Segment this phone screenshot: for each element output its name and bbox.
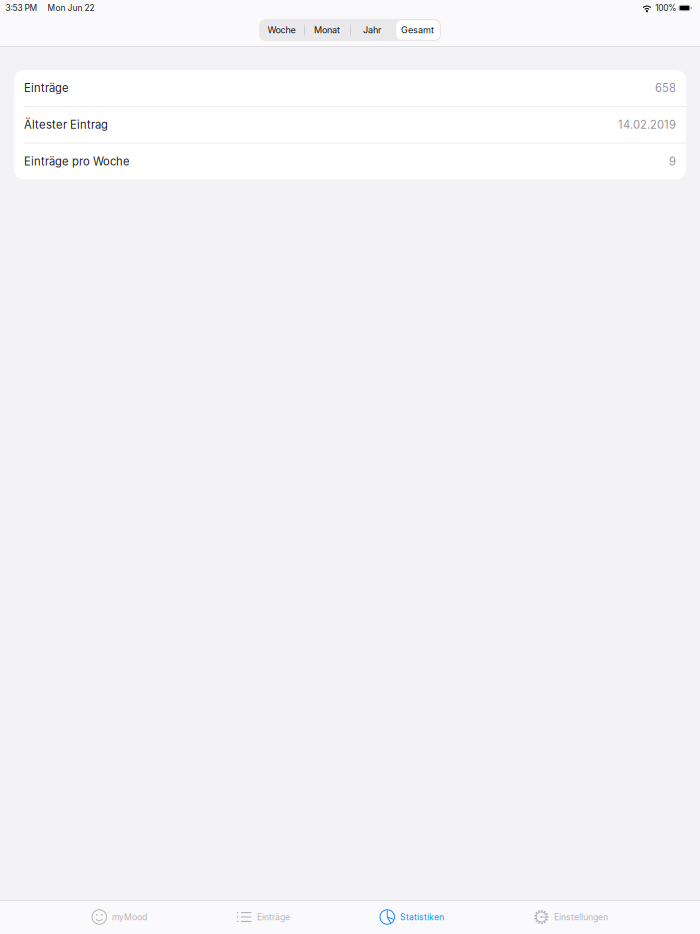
staticText: Gesamt xyxy=(401,24,434,35)
staticText: 658 xyxy=(655,81,676,95)
staticText: Einträge pro Woche xyxy=(24,155,130,168)
staticText: 14.02.2019 xyxy=(618,118,676,131)
staticText: Statistiken xyxy=(400,912,444,922)
staticText: myMood xyxy=(112,912,147,922)
button[interactable]: myMood xyxy=(92,900,147,934)
staticText: 9 xyxy=(669,155,676,168)
staticText: Einträge xyxy=(24,81,69,95)
staticText: Woche xyxy=(267,24,295,35)
staticText: Ältester Eintrag xyxy=(24,118,108,131)
staticText: 3:53 PM xyxy=(5,3,37,13)
button[interactable]: Woche xyxy=(259,19,304,41)
staticText: Mon Jun 22 xyxy=(47,3,94,13)
button[interactable]: Einträge xyxy=(237,900,290,934)
staticText: Monat xyxy=(314,24,340,35)
staticText: Jahr xyxy=(363,24,381,35)
button[interactable]: Einstellungen xyxy=(534,900,608,934)
button[interactable]: Einträge pro Woche xyxy=(14,143,686,179)
button[interactable]: Jahr xyxy=(350,19,394,41)
staticText: 100% xyxy=(655,3,676,13)
button[interactable]: Einträge xyxy=(14,70,686,106)
staticText: Einstellungen xyxy=(554,912,608,922)
button[interactable]: Ältester Eintrag xyxy=(14,107,686,143)
staticText: Einträge xyxy=(257,912,290,922)
button[interactable]: Gesamt xyxy=(394,19,441,41)
button[interactable]: Monat xyxy=(304,19,350,41)
button[interactable]: Statistiken xyxy=(380,900,444,934)
